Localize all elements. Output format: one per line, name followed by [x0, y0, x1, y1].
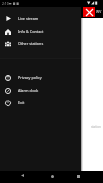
button[interactable]: Live stream — [0, 13, 81, 25]
button[interactable]: Privacy policy — [0, 72, 81, 84]
staticText: 2:10 — [2, 1, 9, 6]
staticText: station — [91, 125, 102, 129]
staticText: Exit — [18, 100, 25, 105]
button[interactable]: Back — [21, 174, 24, 177]
staticText: Privacy policy — [18, 75, 42, 80]
staticText: Live stream — [18, 16, 39, 21]
staticText: Info & Contact — [18, 29, 44, 34]
staticText: WV — [96, 9, 102, 14]
button[interactable]: Alarm clock — [0, 85, 81, 97]
button[interactable]: Other stations — [0, 38, 81, 50]
button[interactable]: Home — [51, 175, 54, 178]
staticText: Other stations — [18, 41, 44, 46]
button[interactable]: Close — [83, 7, 95, 17]
button[interactable]: Exit — [0, 97, 81, 109]
button[interactable]: Info & Contact — [0, 26, 81, 38]
staticText: Alarm clock — [18, 88, 39, 93]
